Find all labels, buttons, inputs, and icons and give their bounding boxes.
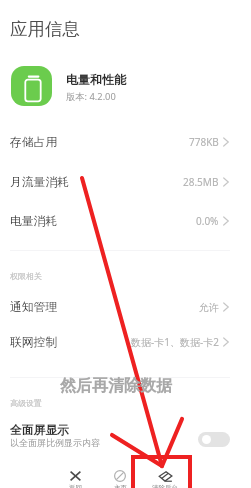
staticText: 电量消耗 <box>10 214 58 229</box>
staticText: 月流量消耗 <box>10 175 69 190</box>
button[interactable]: 电量消耗 <box>0 208 251 234</box>
button[interactable]: 联网控制 <box>0 329 251 355</box>
staticText: 0.0% <box>196 214 219 228</box>
staticText: 数据-卡1、数据-卡2 <box>131 335 219 349</box>
button[interactable]: Toggle full screen display <box>198 432 230 447</box>
staticText: 存储占用 <box>10 135 58 150</box>
staticText: 全面屏显示 <box>10 423 69 438</box>
staticText: 应用信息 <box>10 18 80 40</box>
staticText: 通知管理 <box>10 300 58 315</box>
button[interactable]: Home <box>101 460 139 488</box>
button[interactable]: 全面屏显示 <box>0 416 251 456</box>
staticText: 然后再清除数据 <box>60 376 172 396</box>
staticText: 高级设置 <box>10 398 42 408</box>
staticText: 清除后台 <box>152 484 178 488</box>
staticText: 778KB <box>189 135 219 149</box>
staticText: 电量和性能 <box>66 72 126 87</box>
staticText: 联网控制 <box>10 335 58 350</box>
staticText: 28.5MB <box>183 175 219 189</box>
staticText: 主页 <box>114 484 127 488</box>
staticText: 版本: 4.2.00 <box>66 90 116 103</box>
staticText: 权限相关 <box>10 271 42 281</box>
staticText: 返回 <box>69 484 82 488</box>
staticText: 允许 <box>199 301 219 314</box>
button[interactable]: 月流量消耗 <box>0 169 251 195</box>
button[interactable]: Recents <box>146 460 184 488</box>
button[interactable]: 通知管理 <box>0 294 251 320</box>
staticText: 以全面屏比例显示内容 <box>10 437 100 448</box>
button[interactable]: Back <box>56 460 94 488</box>
button[interactable]: 存储占用 <box>0 129 251 155</box>
